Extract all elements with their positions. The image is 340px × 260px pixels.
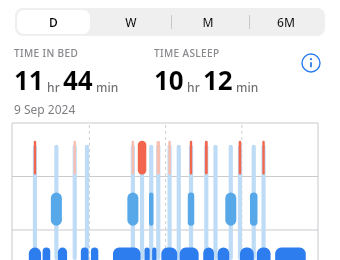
button[interactable]: W [94,10,167,34]
button[interactable]: 6M [249,10,323,34]
staticText: M [202,14,214,30]
staticText: 44 [63,62,93,97]
staticText: hr [44,79,63,95]
button[interactable]: D [17,10,90,34]
staticText: min [93,79,119,95]
button[interactable]: M [171,10,245,34]
staticText: W [125,14,137,30]
staticText: 11 [14,62,44,97]
staticText: 10 [154,62,184,97]
staticText: 9 Sep 2024 [14,101,76,117]
button[interactable]: More information [294,46,328,80]
staticText: hr [184,79,203,95]
staticText: TIME ASLEEP [154,46,220,60]
staticText: min [233,79,259,95]
staticText: D [49,14,58,30]
staticText: 6M [277,14,295,30]
staticText: TIME IN BED [14,46,79,60]
staticText: 12 [203,62,233,97]
